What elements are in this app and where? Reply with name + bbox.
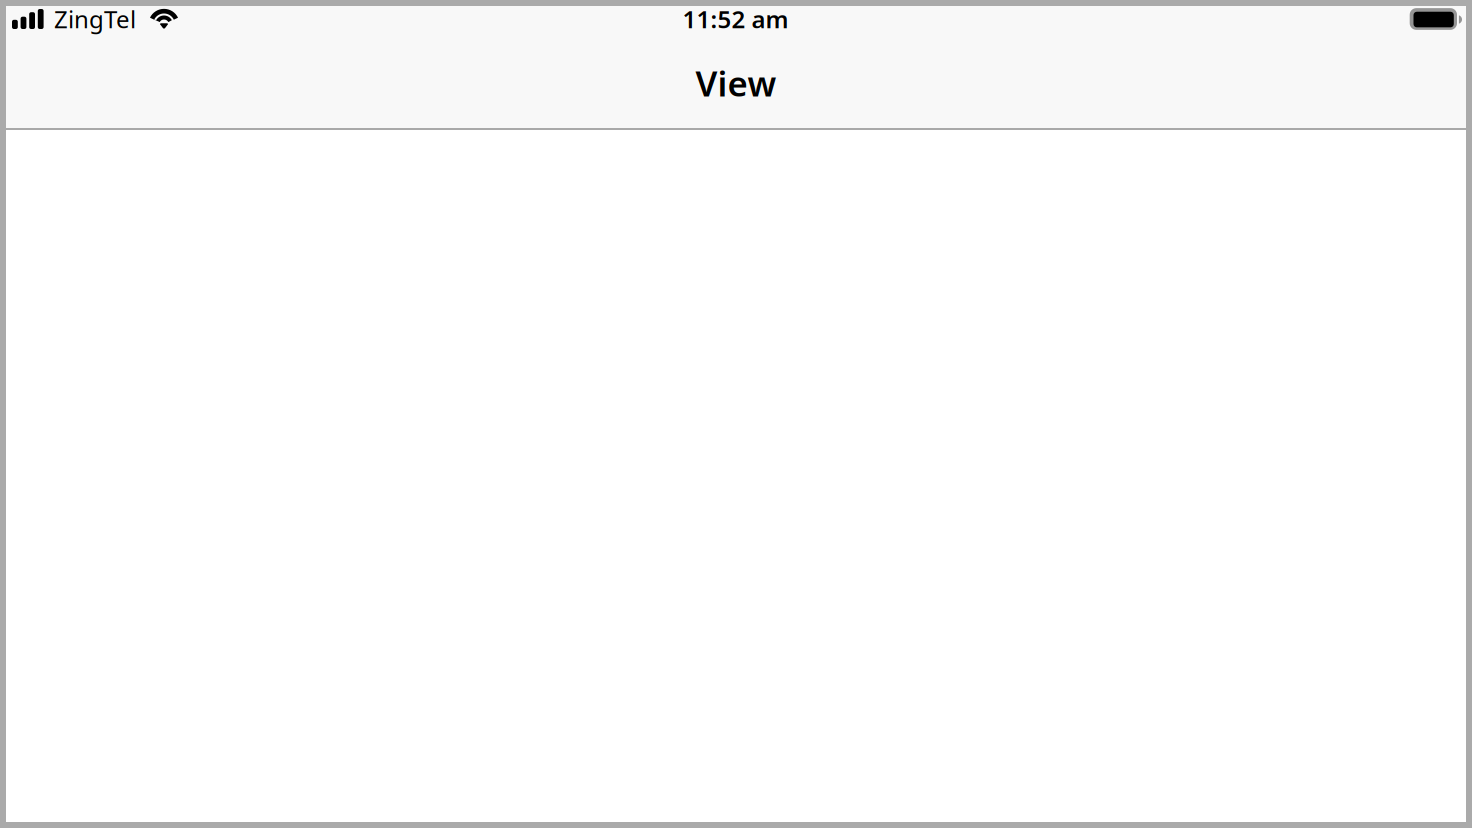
staticText: View — [695, 60, 776, 106]
staticText: ZingTel — [54, 3, 136, 35]
staticText: 11:52 am — [682, 3, 788, 35]
